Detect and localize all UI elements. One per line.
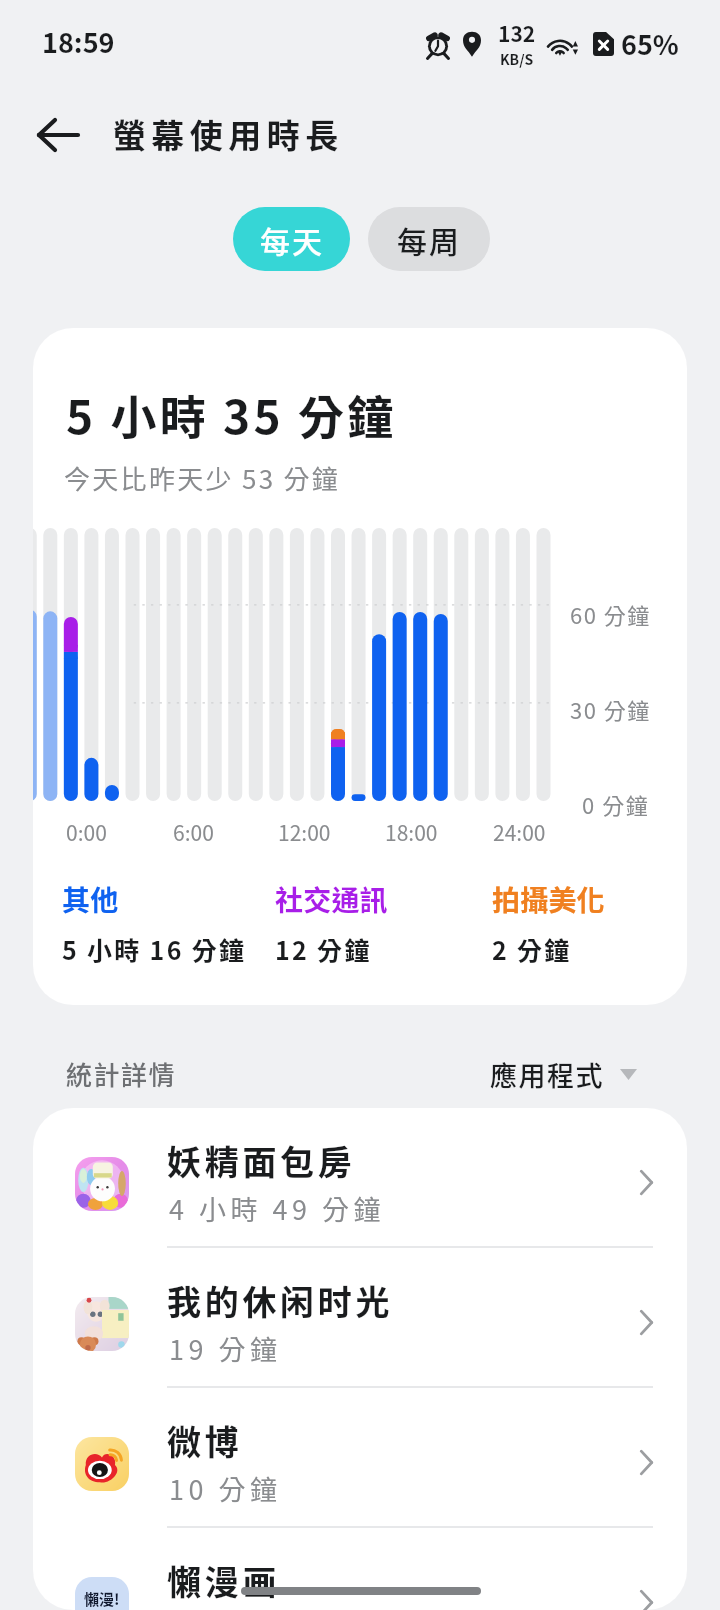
staticText: 10 分鐘: [169, 1469, 282, 1508]
staticText: 應用程式: [490, 1055, 604, 1094]
staticText: 統計詳情: [66, 1055, 177, 1093]
staticText: 0 分鐘: [582, 788, 650, 820]
staticText: 6:00: [173, 817, 214, 847]
staticText: 今天比昨天少 53 分鐘: [64, 459, 341, 497]
button[interactable]: 懶漫!: [33, 1528, 687, 1610]
staticText: 螢幕使用時長: [110, 110, 341, 158]
button[interactable]: 妖精面包房: [33, 1108, 687, 1248]
staticText: 懶漫!: [84, 1588, 120, 1610]
staticText: 5 小時 16 分鐘: [62, 931, 247, 967]
staticText: 132: [498, 18, 536, 48]
staticText: 其他: [62, 879, 119, 920]
button[interactable]: 每天: [233, 207, 350, 271]
staticText: 60 分鐘: [570, 598, 651, 630]
staticText: 微博: [167, 1416, 243, 1465]
staticText: 4 小時 49 分鐘: [169, 1189, 386, 1228]
staticText: 我的休闲时光: [167, 1276, 394, 1325]
staticText: KB/S: [500, 49, 534, 69]
staticText: 每天: [260, 218, 324, 261]
staticText: 5 小時 35 分鐘: [66, 381, 397, 448]
staticText: 0:00: [66, 817, 107, 847]
staticText: 每周: [397, 218, 461, 261]
staticText: 65%: [621, 24, 679, 63]
staticText: 12 分鐘: [275, 931, 372, 967]
button[interactable]: 應用程式: [490, 1055, 637, 1094]
staticText: 18:00: [385, 817, 438, 847]
staticText: 拍攝美化: [492, 879, 605, 920]
button[interactable]: 我的休闲时光: [33, 1248, 687, 1388]
staticText: 12:00: [278, 817, 331, 847]
button[interactable]: Back: [22, 99, 94, 171]
button[interactable]: 每周: [368, 207, 490, 271]
button[interactable]: 微博: [33, 1388, 687, 1528]
staticText: 妖精面包房: [167, 1136, 356, 1185]
staticText: 懶漫画: [167, 1556, 281, 1605]
staticText: 24:00: [493, 817, 546, 847]
staticText: 2 分鐘: [492, 931, 572, 967]
staticText: 19 分鐘: [169, 1329, 282, 1368]
staticText: 18:59: [42, 22, 115, 61]
staticText: 30 分鐘: [570, 693, 651, 725]
staticText: 社交通訊: [275, 879, 388, 920]
